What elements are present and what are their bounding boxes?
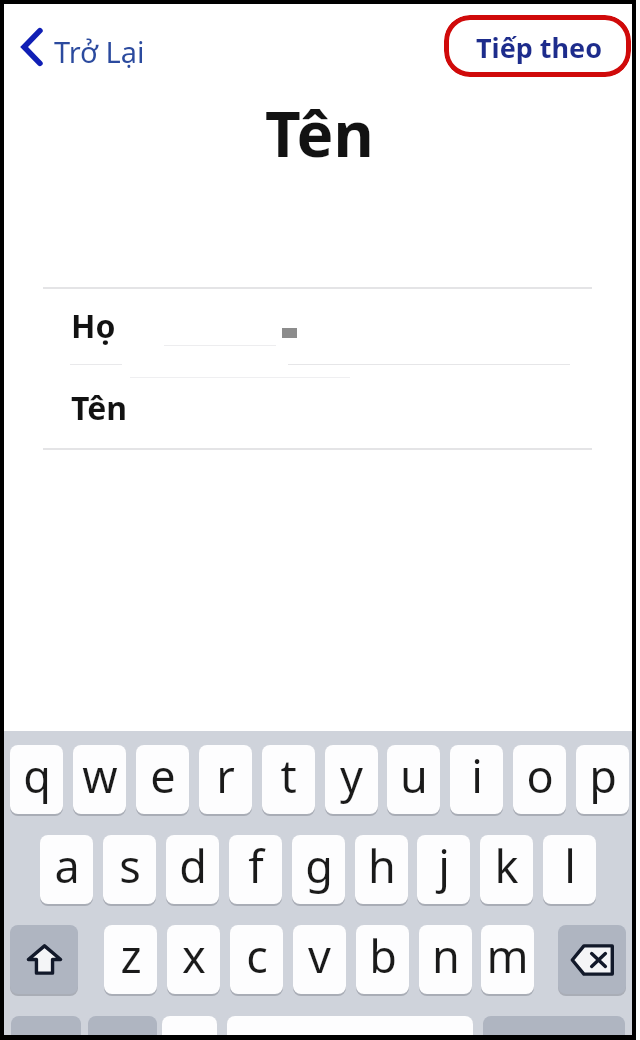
staticText: Họ xyxy=(71,304,116,348)
button[interactable]: Numbers xyxy=(11,1016,81,1035)
button[interactable]: Shift xyxy=(10,925,78,994)
staticText: q xyxy=(23,745,51,806)
staticText: c xyxy=(246,925,268,986)
button[interactable]: y xyxy=(325,745,378,814)
button[interactable]: q xyxy=(10,745,63,814)
staticText: s xyxy=(119,835,141,896)
staticText: r xyxy=(216,745,235,806)
button[interactable]: c xyxy=(230,925,283,994)
button[interactable]: n xyxy=(419,925,472,994)
staticText: d xyxy=(179,835,207,896)
staticText: p xyxy=(589,745,617,806)
button[interactable]: o xyxy=(513,745,566,814)
button[interactable]: r xyxy=(199,745,252,814)
button[interactable]: s xyxy=(103,835,156,904)
button[interactable]: l xyxy=(543,835,596,904)
button[interactable]: g xyxy=(292,835,345,904)
staticText: e xyxy=(150,745,176,806)
button[interactable]: Tên xyxy=(43,372,592,452)
button[interactable]: b xyxy=(356,925,409,994)
button[interactable]: u xyxy=(387,745,440,814)
button[interactable]: e xyxy=(136,745,189,814)
staticText: z xyxy=(120,925,142,986)
staticText: Tiếp theo xyxy=(476,29,603,66)
button[interactable]: z xyxy=(104,925,157,994)
staticText: w xyxy=(82,745,118,806)
button[interactable]: Dictation xyxy=(162,1016,217,1035)
button[interactable]: d xyxy=(166,835,219,904)
button[interactable]: Space xyxy=(227,1016,473,1035)
button[interactable]: Backspace xyxy=(558,925,626,994)
button[interactable]: p xyxy=(576,745,629,814)
staticText: l xyxy=(564,835,576,896)
staticText: t xyxy=(280,745,297,806)
staticText: Tên xyxy=(265,91,374,175)
staticText: m xyxy=(486,925,529,986)
button[interactable]: j xyxy=(417,835,470,904)
staticText: h xyxy=(368,835,396,896)
button[interactable]: Emoji xyxy=(88,1016,157,1035)
staticText: k xyxy=(494,835,519,896)
button[interactable]: m xyxy=(481,925,534,994)
button[interactable]: h xyxy=(355,835,408,904)
button[interactable]: Họ xyxy=(43,292,592,368)
button[interactable]: w xyxy=(73,745,126,814)
button[interactable]: v xyxy=(293,925,346,994)
staticText: Tên xyxy=(71,386,128,430)
staticText: n xyxy=(432,925,460,986)
button[interactable]: f xyxy=(229,835,282,904)
staticText: a xyxy=(54,835,80,896)
staticText: f xyxy=(248,835,264,896)
button[interactable]: t xyxy=(262,745,315,814)
staticText: i xyxy=(471,745,483,806)
staticText: o xyxy=(526,745,554,806)
staticText: b xyxy=(369,925,397,986)
staticText: g xyxy=(305,835,333,896)
button[interactable]: x xyxy=(167,925,220,994)
staticText: Trở Lại xyxy=(54,32,145,71)
button[interactable]: Back xyxy=(16,22,156,72)
staticText: y xyxy=(340,745,363,806)
staticText: x xyxy=(182,925,206,986)
staticText: v xyxy=(308,925,331,986)
button[interactable]: a xyxy=(40,835,93,904)
button[interactable]: Tiếp theo xyxy=(444,15,631,77)
staticText: u xyxy=(400,745,428,806)
button[interactable]: k xyxy=(480,835,533,904)
button[interactable]: i xyxy=(450,745,503,814)
staticText: j xyxy=(438,835,450,896)
